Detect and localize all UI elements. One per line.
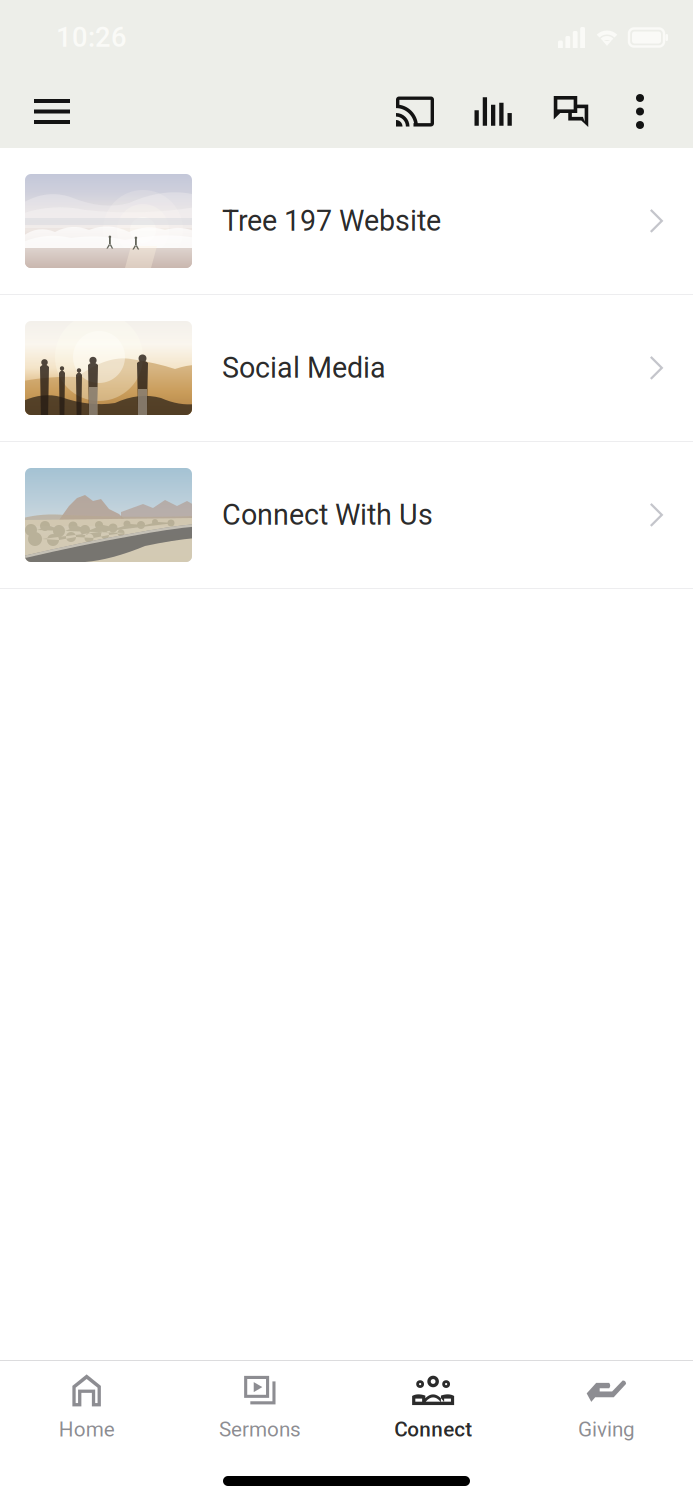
button[interactable]: Sermons — [173, 1361, 346, 1447]
staticText: Home — [59, 1417, 115, 1442]
button[interactable]: Connect With Us — [0, 442, 693, 588]
staticText: Giving — [578, 1417, 635, 1442]
button[interactable]: Messages — [532, 75, 610, 148]
staticText: Sermons — [219, 1417, 301, 1442]
staticText: Connect — [394, 1417, 472, 1442]
button[interactable]: Tree 197 Website — [0, 148, 693, 294]
staticText: Social Media — [222, 351, 386, 385]
staticText: Tree 197 Website — [222, 204, 441, 238]
button[interactable]: Cast — [376, 75, 454, 148]
staticText: 10:26 — [56, 21, 127, 53]
staticText: Connect With Us — [222, 498, 433, 532]
button[interactable]: Connect — [346, 1361, 520, 1447]
button[interactable]: Home — [0, 1361, 173, 1447]
button[interactable]: Menu — [21, 75, 83, 148]
button[interactable]: Giving — [520, 1361, 693, 1447]
button[interactable]: More options — [610, 75, 670, 148]
button[interactable]: Social Media — [0, 295, 693, 441]
button[interactable]: Now Playing — [454, 75, 532, 148]
